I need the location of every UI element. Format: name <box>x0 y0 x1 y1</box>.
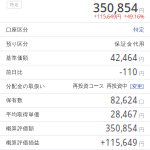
staticText: 概算評価額 <box>6 125 33 132</box>
staticText: 概算評価損益 <box>6 139 39 146</box>
staticText: 円 <box>139 141 144 147</box>
staticText: +49.16% <box>124 13 144 20</box>
staticText: 保有数 <box>6 97 22 104</box>
staticText: 保証金代用 <box>115 41 144 47</box>
staticText: 特定 <box>10 2 18 7</box>
staticText: 円 <box>139 70 144 77</box>
staticText: 基準価額 <box>6 55 28 61</box>
staticText: 円 <box>139 56 144 63</box>
staticText: 口座区分 <box>6 26 28 33</box>
staticText: 預り区分 <box>6 41 28 47</box>
button[interactable]: 特定 <box>133 26 144 33</box>
staticText: 平均取得単価 <box>6 111 39 118</box>
staticText: -110 <box>119 67 137 77</box>
staticText: 350,854 <box>105 123 137 134</box>
staticText: +115,649円 <box>94 13 121 20</box>
staticText: 円 <box>139 7 144 14</box>
staticText: 再投資コース <box>73 83 104 90</box>
staticText: [変更] <box>130 83 144 90</box>
staticText: 円 <box>139 127 144 133</box>
button[interactable]: [変更] <box>130 83 144 90</box>
staticText: 28,467 <box>110 109 137 120</box>
staticText: 口 <box>139 98 144 105</box>
staticText: 特定 <box>133 26 144 33</box>
staticText: 再投資中 <box>107 83 127 90</box>
staticText: 分配金の取扱い <box>6 83 45 89</box>
staticText: +115,649 <box>100 137 137 148</box>
staticText: 円 <box>139 112 144 119</box>
staticText: 前日比 <box>6 69 22 75</box>
staticText: 42,464 <box>110 53 137 63</box>
staticText: 350,854 <box>93 0 138 15</box>
staticText: 82,624 <box>110 95 137 106</box>
